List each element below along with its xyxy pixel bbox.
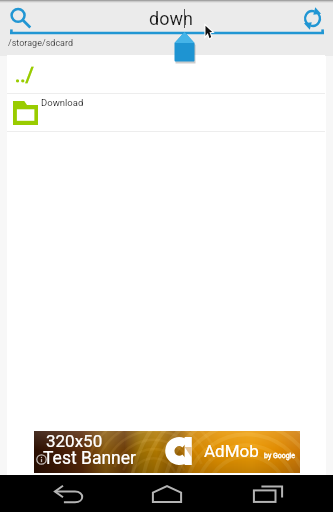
staticText: Download [41,97,84,108]
staticText: ../ [15,63,34,86]
staticText: Test Banner [43,448,136,469]
button[interactable]: Search [8,6,32,30]
staticText: by Google [264,452,296,460]
button[interactable]: 320x50 [34,431,300,473]
button[interactable]: ../ [7,55,325,93]
button[interactable]: Refresh [301,6,325,32]
staticText: AdMob [204,441,259,461]
button[interactable]: Home [143,475,191,512]
button[interactable]: Recent apps [238,475,286,512]
staticText: 320x50 [46,431,103,451]
staticText: down [149,8,193,29]
button[interactable]: Back [47,475,95,512]
staticText: /storage/sdcard [8,38,74,49]
button[interactable]: Download [7,94,325,131]
